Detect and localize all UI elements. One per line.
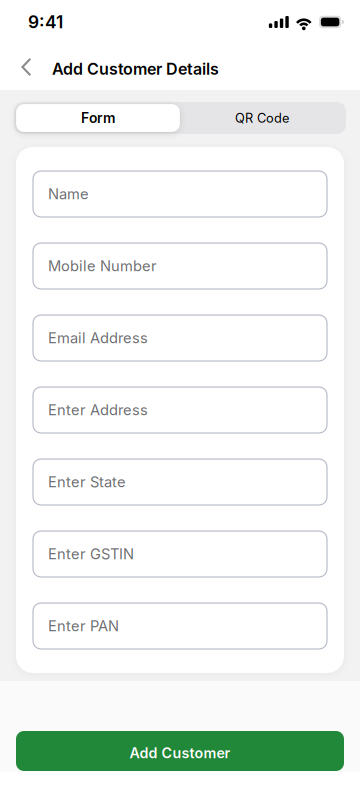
- button[interactable]: Enter PAN: [33, 603, 327, 649]
- button[interactable]: Back: [15, 46, 52, 88]
- button[interactable]: QR Code: [180, 104, 344, 132]
- staticText: Mobile Number: [48, 257, 157, 275]
- staticText: 9:41: [28, 11, 63, 32]
- staticText: Form: [81, 110, 115, 126]
- staticText: QR Code: [235, 110, 289, 126]
- staticText: Name: [48, 185, 89, 203]
- button[interactable]: Add Customer: [16, 731, 344, 771]
- staticText: Enter Address: [48, 401, 148, 419]
- staticText: Add Customer: [129, 744, 230, 762]
- button[interactable]: Mobile Number: [33, 243, 327, 289]
- button[interactable]: Email Address: [33, 315, 327, 361]
- button[interactable]: Name: [33, 171, 327, 217]
- staticText: Enter PAN: [48, 617, 119, 635]
- button[interactable]: Enter Address: [33, 387, 327, 433]
- button[interactable]: Enter State: [33, 459, 327, 505]
- button[interactable]: Form: [16, 104, 180, 132]
- staticText: Add Customer Details: [52, 59, 219, 79]
- button[interactable]: Enter GSTIN: [33, 531, 327, 577]
- staticText: Enter State: [48, 473, 126, 491]
- staticText: Enter GSTIN: [48, 545, 134, 563]
- staticText: Email Address: [48, 329, 148, 347]
